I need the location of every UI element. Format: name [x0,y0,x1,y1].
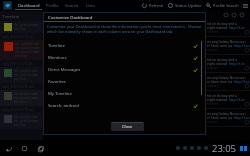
staticText: Close [122,124,133,130]
staticText: the quick brown fox jumps [15,50,42,54]
button[interactable]: Tweet action [239,12,245,18]
button[interactable]: msung Galaxy Nexus out [206,73,250,91]
staticText: My Timeline [48,91,72,97]
staticText: the quick brown fox jumps [14,92,42,96]
staticText: retweet [207,120,218,124]
staticText: Customize Dashboard [48,14,93,20]
staticText: reply, 8:37:12 UTC via TweetDeck [2,85,43,89]
staticText: eight instead [207,25,229,29]
staticText: reply, 8:37:12 UTC via TweetDeck [2,108,43,112]
staticText: the quick brown fox jumps [14,96,42,100]
button[interactable]: nd on its way and a [206,55,250,73]
staticText: http://t.co [234,43,250,47]
button[interactable]: Search [62,0,82,11]
staticText: msung Galaxy Nexus out [207,75,246,79]
staticText: Favorites [48,79,66,85]
button[interactable]: Dashboard [15,0,42,11]
staticText: 23:05 [212,142,237,155]
staticText: nd on its way and a [207,21,237,25]
button[interactable]: Close [111,122,144,131]
staticText: Customize your Dashboard to show the inf… [47,24,202,34]
button[interactable]: Profile [42,0,62,11]
staticText: the quick brown fox jumps [14,69,42,73]
button[interactable]: Timeline [43,40,206,52]
staticText: er Store item via [207,115,234,119]
button[interactable]: Refresh [140,0,166,11]
button[interactable]: Direct Messages [43,64,206,76]
staticText: Profile [46,3,59,9]
staticText: msung Galaxy Nexus out [207,111,246,115]
staticText: Timeline [2,13,20,19]
staticText: the quick brown fox jumps [14,73,42,77]
staticText: retweet [207,102,218,106]
button[interactable]: Home [20,144,29,153]
staticText: reply, 8:37:12 UTC via TweetDeck [2,62,43,66]
button[interactable]: Mentions [43,52,206,64]
button[interactable]: App icon [3,1,12,10]
staticText: retweet [207,48,218,52]
staticText: text line [14,77,26,81]
staticText: the quick brown fox jumps [14,119,42,123]
staticText: nd on its way and a [207,57,237,61]
staticText: nd on its way and a [207,93,237,97]
button[interactable]: Search: android [43,100,206,112]
staticText: Profile Search [213,3,239,8]
button[interactable]: the quick brown fox jumps [0,67,43,83]
button[interactable]: Favorites [43,76,206,88]
staticText: Direct Messages [48,67,81,73]
staticText: er Store item via [207,79,234,83]
staticText: text line [14,100,26,104]
button[interactable]: the quick brown fox jumps [0,90,43,106]
button[interactable]: Profile Search [204,0,241,11]
button[interactable]: the quick brown fox jumps [0,40,43,60]
button[interactable]: msung Galaxy Nexus out [206,109,250,127]
button[interactable]: My Timeline [43,88,206,100]
button[interactable]: msung Galaxy Nexus out [206,37,250,55]
button[interactable]: nd on its way and a [206,91,250,109]
staticText: http://t.co [229,25,245,29]
staticText: eight instead [207,61,229,65]
staticText: http://t.co [234,115,250,119]
staticText: retweet [207,84,218,88]
staticText: the quick brown fox jumps [14,23,42,27]
staticText: Search [65,3,79,9]
staticText: Mentions [48,55,67,61]
staticText: Dashboard [18,3,40,9]
button[interactable]: the quick brown fox jumps [0,113,43,129]
button[interactable]: Recent apps [36,144,45,153]
staticText: Refresh [149,3,164,8]
button[interactable]: Tweet action [223,12,229,18]
button[interactable]: Lists [82,0,98,11]
staticText: the quick brown fox jumps [14,115,42,119]
staticText: Status Update [175,3,202,8]
staticText: text line [14,123,26,127]
staticText: text line [15,54,27,58]
button[interactable]: Status Update [166,0,204,11]
staticText: er Store item via [207,43,234,47]
staticText: reply, 8:37:12 UTC via TweetDeck [2,35,43,39]
staticText: Search: android [48,103,79,109]
staticText: http://t.co [234,79,250,83]
button[interactable]: nd on its way and a [206,19,250,37]
staticText: the quick brown fox jumps [15,42,42,46]
staticText: http://t.co [229,61,245,65]
staticText: http://t.co [229,97,245,101]
staticText: Timeline [48,43,65,49]
button[interactable]: More options [241,0,250,11]
staticText: Lists [86,3,95,9]
staticText: eight instead [207,97,229,101]
staticText: text line [14,27,26,31]
button[interactable]: the quick brown fox jumps [0,21,43,33]
staticText: retweet [207,66,218,70]
button[interactable]: Tweet action [231,12,237,18]
staticText: msung Galaxy Nexus out [207,39,246,43]
button[interactable]: Back [4,144,13,153]
staticText: the quick brown fox jumps [15,46,42,50]
staticText: retweet [207,30,218,34]
